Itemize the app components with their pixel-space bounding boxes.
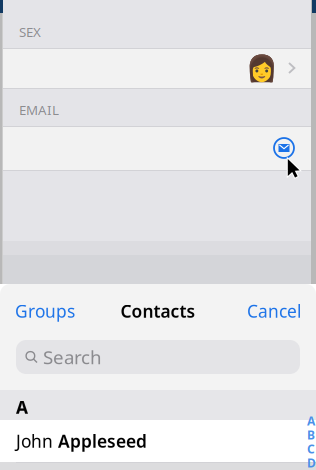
- button[interactable]: Groups: [11, 292, 79, 329]
- staticText: 👩: [246, 53, 278, 82]
- staticText: Search: [43, 345, 102, 369]
- staticText: C: [307, 441, 315, 457]
- button[interactable]: Cancel: [243, 292, 305, 329]
- staticText: A: [307, 413, 315, 429]
- button[interactable]: Add email: [0, 126, 316, 170]
- button[interactable]: 👩: [0, 48, 316, 88]
- staticText: B: [307, 427, 315, 443]
- staticText: Cancel: [247, 299, 301, 322]
- staticText: Contacts: [120, 299, 195, 322]
- staticText: EMAIL: [19, 101, 59, 119]
- staticText: A: [16, 395, 28, 418]
- staticText: Groups: [15, 299, 75, 322]
- staticText: SEX: [19, 23, 41, 41]
- button[interactable]: John Appleseed: [0, 420, 316, 462]
- button[interactable]: Search: [16, 340, 300, 374]
- staticText: D: [307, 455, 316, 470]
- staticText: John Appleseed: [16, 429, 147, 452]
